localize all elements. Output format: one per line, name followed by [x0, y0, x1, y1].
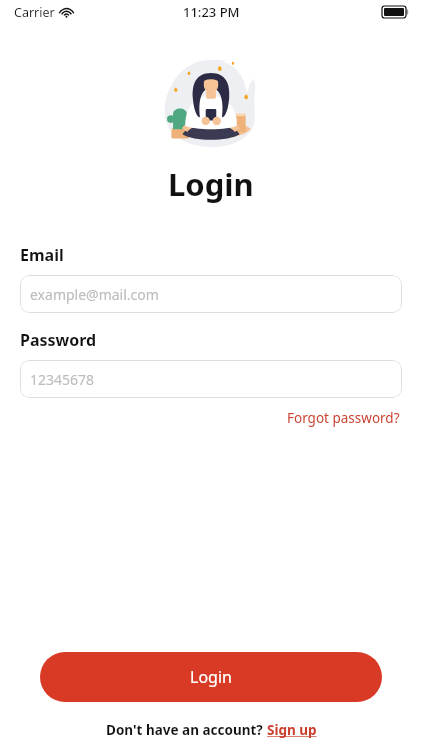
staticText: Email: [20, 244, 64, 266]
button[interactable]: 12345678: [20, 360, 402, 398]
staticText: Password: [20, 329, 97, 351]
staticText: example@mail.com: [30, 285, 159, 304]
staticText: Login: [190, 666, 232, 688]
staticText: Login: [168, 163, 254, 205]
staticText: 12345678: [30, 370, 95, 389]
staticText: 11:23 PM: [183, 3, 240, 21]
button[interactable]: Sign up: [267, 721, 317, 739]
staticText: Don't have an account?: [106, 721, 267, 739]
staticText: Forgot password?: [287, 409, 400, 427]
button[interactable]: example@mail.com: [20, 275, 402, 313]
button[interactable]: Forgot password?: [285, 407, 402, 429]
button[interactable]: Login: [40, 652, 382, 702]
staticText: Sign up: [267, 721, 317, 739]
staticText: Carrier: [14, 4, 55, 21]
